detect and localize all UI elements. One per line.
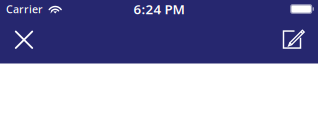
- button[interactable]: Compose: [274, 21, 314, 62]
- button[interactable]: Close: [4, 21, 44, 63]
- staticText: 6:24 PM: [133, 0, 184, 18]
- staticText: Carrier: [6, 2, 43, 16]
